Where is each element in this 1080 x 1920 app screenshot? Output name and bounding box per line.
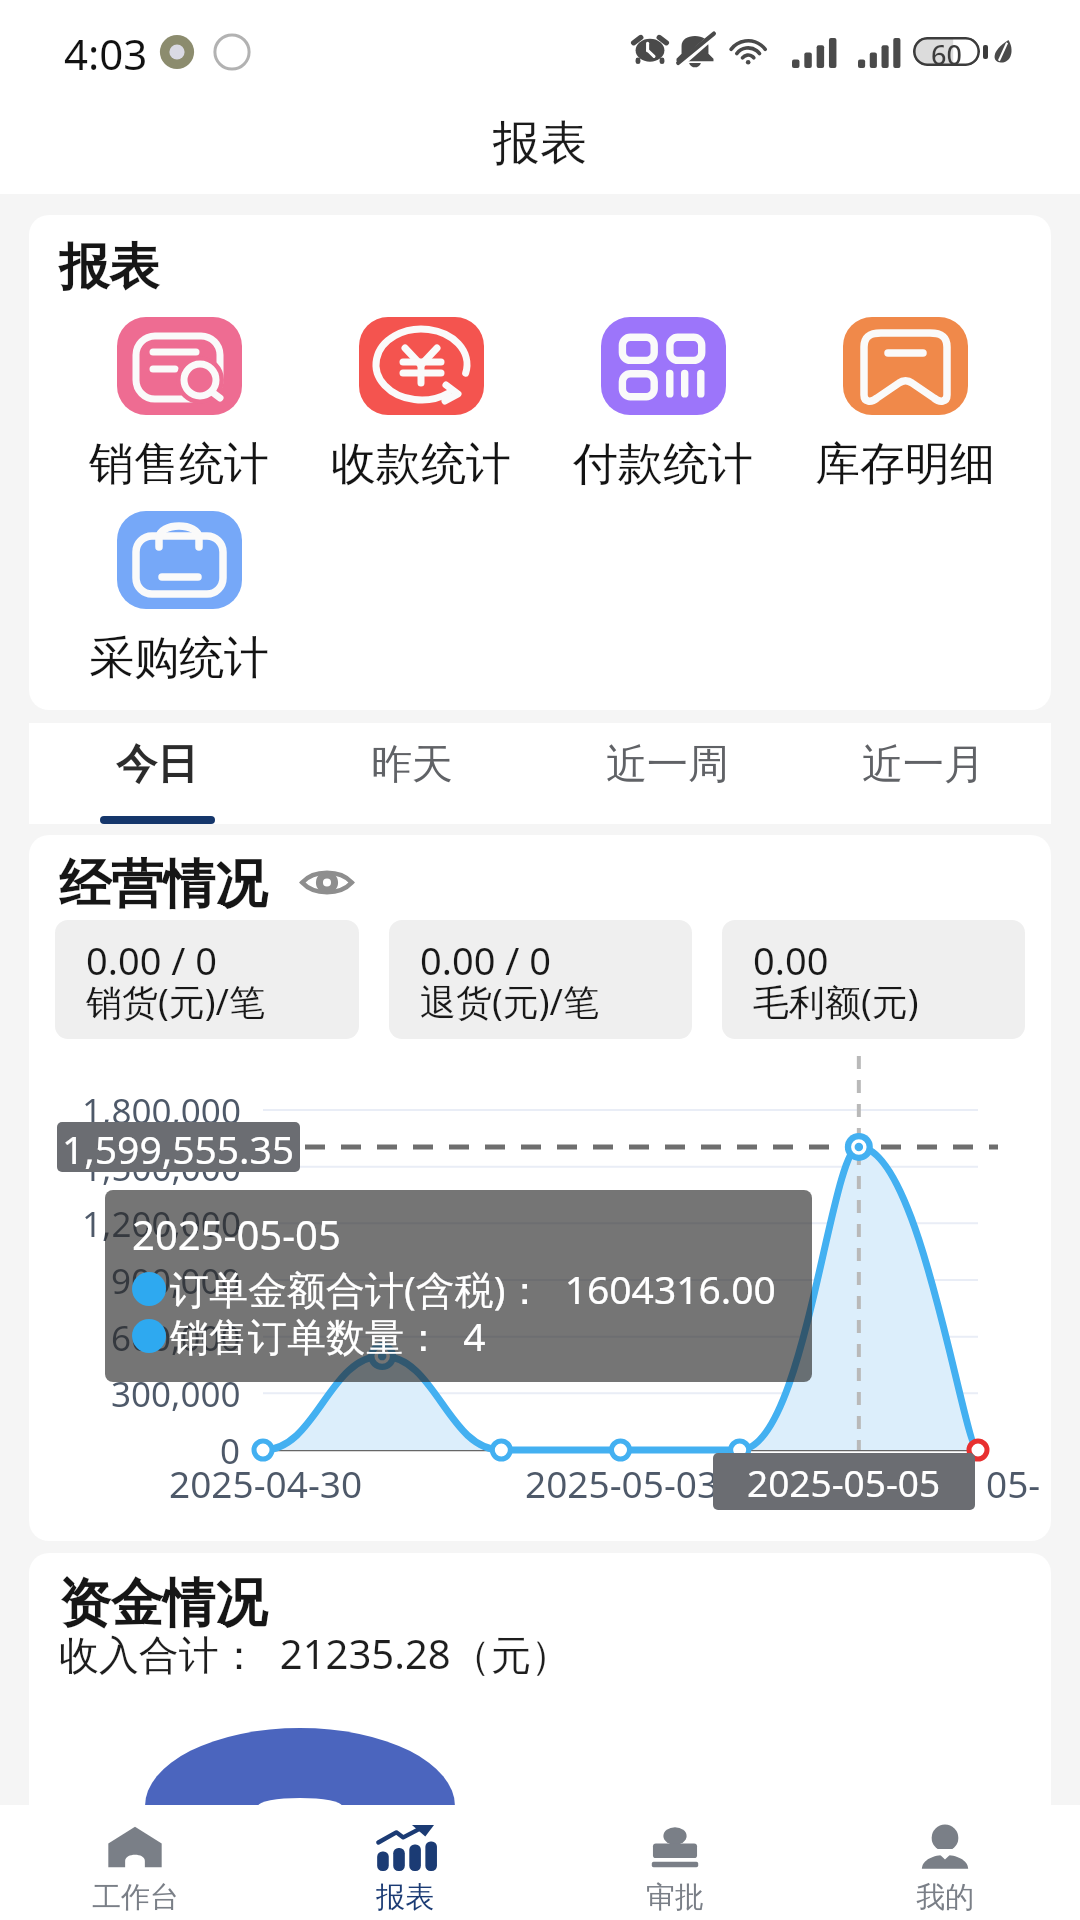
staticText: 销售订单数量： 4	[170, 1309, 486, 1362]
button[interactable]: 工作台	[0, 1805, 270, 1920]
button[interactable]: 0.00	[722, 920, 1025, 1039]
staticText: 报表	[59, 236, 159, 299]
staticText: 2025-05-03	[525, 1458, 719, 1508]
button[interactable]: 今日	[29, 723, 284, 824]
staticText: 0	[220, 1427, 241, 1475]
button[interactable]: 我的	[810, 1805, 1080, 1920]
staticText: 0.00	[753, 934, 829, 986]
staticText: 报表	[376, 1879, 434, 1916]
button[interactable]: 采购统计	[58, 511, 300, 687]
staticText: 4:03	[64, 25, 148, 82]
staticText: 我的	[916, 1879, 974, 1916]
staticText: 900,000	[111, 1257, 241, 1305]
button[interactable]: 近一月	[795, 723, 1051, 824]
staticText: 2025-05-05	[747, 1457, 941, 1507]
staticText: 收款统计	[331, 436, 511, 493]
button[interactable]: 销售统计	[58, 317, 300, 493]
staticText: 60	[931, 37, 962, 65]
staticText: 工作台	[92, 1879, 179, 1916]
button[interactable]: 0.00 / 0	[389, 920, 692, 1039]
staticText: 今日	[116, 739, 198, 791]
staticText: 收入合计： 21235.28（元）	[59, 1626, 571, 1681]
staticText: 1,800,000	[82, 1087, 241, 1135]
staticText: 1,500,000	[82, 1144, 241, 1192]
staticText: 经营情况	[59, 852, 267, 918]
staticText: 2025-04-30	[169, 1458, 363, 1508]
staticText: 销货(元)/笔	[86, 977, 265, 1026]
staticText: 近一月	[862, 739, 985, 791]
staticText: 报表	[493, 114, 587, 173]
button[interactable]: 库存明细	[784, 317, 1026, 493]
staticText: 300,000	[111, 1370, 241, 1418]
staticText: 退货(元)/笔	[420, 977, 599, 1026]
staticText: 1,599,555.35	[62, 1122, 295, 1172]
staticText: 1,200,000	[82, 1200, 241, 1248]
button[interactable]: 0.00 / 0	[55, 920, 359, 1039]
button[interactable]: Toggle visibility	[300, 869, 354, 896]
button[interactable]: 收款统计	[300, 317, 542, 493]
staticText: 库存明细	[815, 436, 995, 493]
button[interactable]: 昨天	[284, 723, 539, 824]
button[interactable]: 近一周	[539, 723, 795, 824]
staticText: 近一周	[606, 739, 729, 791]
staticText: 资金情况	[59, 1571, 267, 1637]
staticText: 0.00 / 0	[86, 934, 218, 986]
staticText: 0.00 / 0	[420, 934, 552, 986]
staticText: 2025-05-05	[132, 1207, 341, 1261]
staticText: 采购统计	[89, 630, 269, 687]
button[interactable]: 付款统计	[542, 317, 784, 493]
staticText: 毛利额(元)	[753, 977, 919, 1026]
staticText: 销售统计	[89, 436, 269, 493]
staticText: 审批	[646, 1879, 704, 1916]
staticText: 付款统计	[573, 436, 753, 493]
button[interactable]: 审批	[540, 1805, 810, 1920]
button[interactable]: 报表	[270, 1805, 540, 1920]
staticText: 昨天	[371, 739, 453, 791]
staticText: 05-	[986, 1458, 1041, 1508]
staticText: 600,000	[111, 1314, 241, 1362]
staticText: 订单金额合计(含税)： 1604316.00	[170, 1262, 776, 1315]
